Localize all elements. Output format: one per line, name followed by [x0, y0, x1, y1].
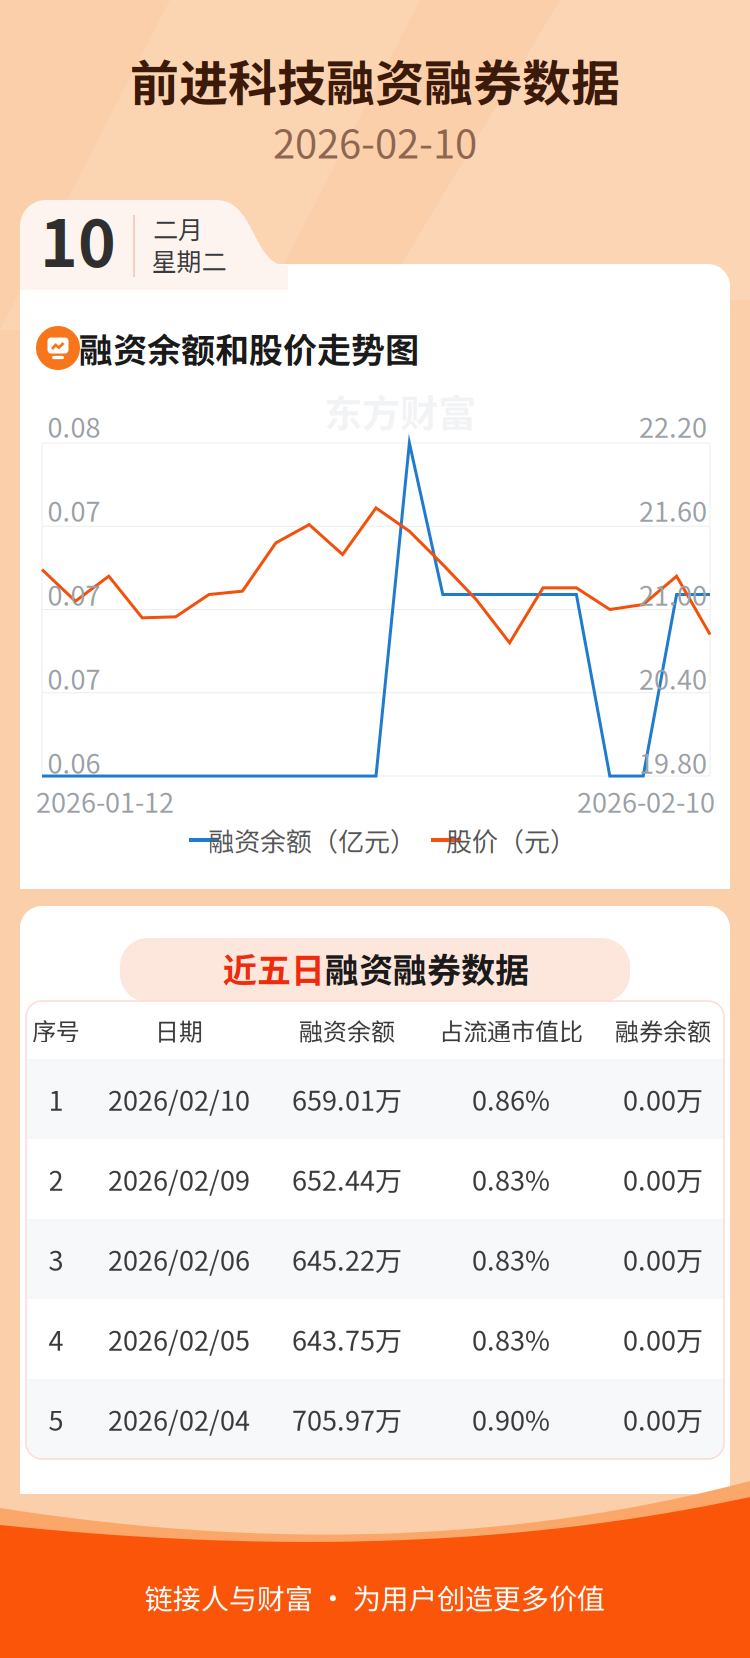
staticText: 2026-02-10 — [273, 112, 477, 170]
staticText: 前进科技融资融券数据 — [130, 44, 620, 115]
staticText: 二月 — [153, 210, 203, 246]
staticText: 近五日 — [223, 943, 325, 993]
staticText: 日期 — [155, 1013, 203, 1047]
staticText: 19.80 — [639, 742, 707, 782]
staticText: 融资余额（亿元） — [208, 821, 416, 859]
staticText: 1 — [48, 1079, 63, 1119]
staticText: 0.07 — [47, 574, 100, 614]
staticText: 21.00 — [639, 574, 707, 614]
staticText: 0.08 — [47, 406, 100, 446]
staticText: 0.00万 — [623, 1319, 703, 1359]
staticText: 652.44万 — [292, 1159, 402, 1199]
staticText: 0.00万 — [623, 1239, 703, 1279]
staticText: 融券余额 — [615, 1013, 711, 1047]
staticText: 0.83% — [472, 1159, 550, 1199]
staticText: 705.97万 — [292, 1399, 402, 1439]
staticText: 2026-01-12 — [36, 781, 174, 821]
staticText: 3 — [48, 1239, 63, 1279]
staticText: 0.07 — [47, 658, 100, 698]
staticText: 22.20 — [639, 406, 707, 446]
staticText: 645.22万 — [292, 1239, 402, 1279]
staticText: 2026/02/05 — [108, 1319, 250, 1359]
staticText: 0.86% — [472, 1079, 550, 1119]
staticText: 20.40 — [639, 658, 707, 698]
staticText: 10 — [40, 193, 116, 285]
staticText: 2026/02/09 — [108, 1159, 250, 1199]
staticText: 融资余额和股价走势图 — [79, 323, 419, 373]
staticText: 东方财富 — [324, 383, 476, 438]
staticText: 0.00万 — [623, 1079, 703, 1119]
staticText: 0.83% — [472, 1239, 550, 1279]
staticText: 2026/02/10 — [108, 1079, 250, 1119]
staticText: 0.00万 — [623, 1159, 703, 1199]
staticText: 2026/02/04 — [108, 1399, 250, 1439]
staticText: 股价（元） — [446, 821, 576, 859]
staticText: 21.60 — [639, 490, 707, 530]
staticText: 2026/02/06 — [108, 1239, 250, 1279]
staticText: 0.90% — [472, 1399, 550, 1439]
staticText: 星期二 — [151, 242, 226, 278]
staticText: 2026-02-10 — [577, 781, 715, 821]
staticText: 占流通市值比 — [439, 1013, 583, 1047]
staticText: 2 — [48, 1159, 63, 1199]
staticText: 5 — [48, 1399, 63, 1439]
staticText: 融资余额 — [299, 1013, 395, 1047]
staticText: 链接人与财富 · 为用户创造更多价值 — [145, 1577, 605, 1617]
staticText: 0.07 — [47, 490, 100, 530]
staticText: 序号 — [32, 1013, 80, 1047]
staticText: 0.83% — [472, 1319, 550, 1359]
staticText: 融资融券数据 — [325, 943, 529, 993]
staticText: 4 — [48, 1319, 63, 1359]
staticText: 643.75万 — [292, 1319, 402, 1359]
staticText: 0.00万 — [623, 1399, 703, 1439]
staticText: 0.06 — [47, 742, 100, 782]
staticText: 659.01万 — [292, 1079, 402, 1119]
